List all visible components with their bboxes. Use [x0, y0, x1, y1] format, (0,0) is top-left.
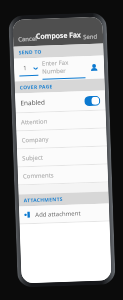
button[interactable]: Attention — [16, 110, 106, 131]
button[interactable]: Cancel — [13, 32, 42, 47]
button[interactable]: 1 — [19, 64, 38, 76]
button[interactable]: Subject — [17, 146, 107, 166]
staticText: 1 — [23, 64, 27, 72]
staticText: Company — [21, 135, 49, 144]
button[interactable]: Add attachment — [19, 203, 109, 223]
button[interactable]: Company — [16, 128, 107, 148]
button[interactable]: Comments — [18, 164, 108, 184]
staticText: SEND TO — [18, 49, 43, 56]
staticText: COVER PAGE — [20, 83, 53, 91]
button[interactable]: Choose contact — [88, 62, 99, 73]
staticText: Enabled — [20, 98, 45, 107]
staticText: Comments — [23, 171, 54, 180]
button[interactable]: Send — [78, 29, 103, 44]
staticText: ATTACHMENTS — [24, 196, 63, 204]
staticText: Cancel — [18, 35, 37, 43]
staticText: Subject — [22, 154, 43, 162]
staticText: Enter Fax Number — [42, 58, 85, 76]
button[interactable]: Enter Fax Number — [42, 58, 85, 80]
staticText: Add attachment — [35, 209, 81, 219]
staticText: Compose Fax — [36, 30, 81, 42]
staticText: Attention — [21, 117, 48, 126]
staticText: Send — [83, 33, 98, 41]
button[interactable]: Enabled — [15, 90, 106, 113]
